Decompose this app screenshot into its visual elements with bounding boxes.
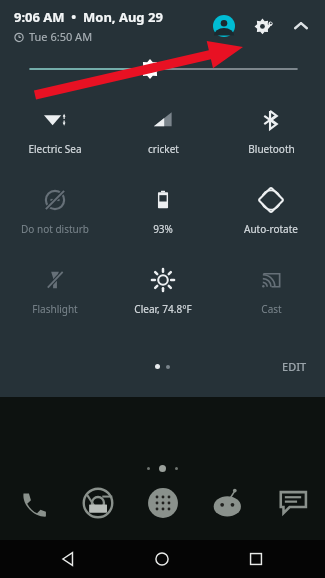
button[interactable]: Collapse <box>287 12 315 40</box>
button[interactable]: Home <box>142 540 182 578</box>
staticText: Do not disturb <box>21 222 89 236</box>
button[interactable]: Messaging <box>260 476 325 530</box>
button[interactable]: Brightness <box>0 52 325 86</box>
button[interactable]: 93% <box>109 172 217 252</box>
button[interactable]: User profile <box>209 11 239 41</box>
button[interactable]: Clear, 74.8°F <box>109 252 217 332</box>
staticText: cricket <box>148 142 179 156</box>
button[interactable]: Electric Sea <box>0 92 109 172</box>
button[interactable]: Auto-rotate <box>217 172 325 252</box>
button[interactable]: Phone <box>0 476 65 530</box>
staticText: Electric Sea <box>28 142 82 156</box>
staticText: Tue 6:50 AM <box>29 29 93 44</box>
staticText: 93% <box>153 222 173 236</box>
staticText: Flashlight <box>32 302 78 316</box>
button[interactable]: Flashlight <box>0 252 109 332</box>
staticText: Bluetooth <box>248 142 295 156</box>
staticText: Clear, 74.8°F <box>134 302 192 316</box>
button[interactable]: cricket <box>109 92 217 172</box>
button[interactable]: Chrome Beta <box>65 476 130 530</box>
staticText: EDIT <box>282 359 307 374</box>
button[interactable]: Recents <box>236 540 276 578</box>
button[interactable]: Cast <box>217 252 325 332</box>
staticText: Auto-rotate <box>244 222 298 236</box>
button[interactable]: EDIT <box>278 357 311 376</box>
button[interactable]: Settings <box>249 11 279 41</box>
staticText: Cast <box>261 302 282 316</box>
staticText: 9:06 AM • Mon, Aug 29 <box>14 8 163 26</box>
button[interactable]: Reddit <box>195 476 260 530</box>
button[interactable]: All apps <box>130 476 195 530</box>
button[interactable]: Bluetooth <box>217 92 325 172</box>
button[interactable]: Do not disturb <box>0 172 109 252</box>
button[interactable]: Back <box>48 540 88 578</box>
